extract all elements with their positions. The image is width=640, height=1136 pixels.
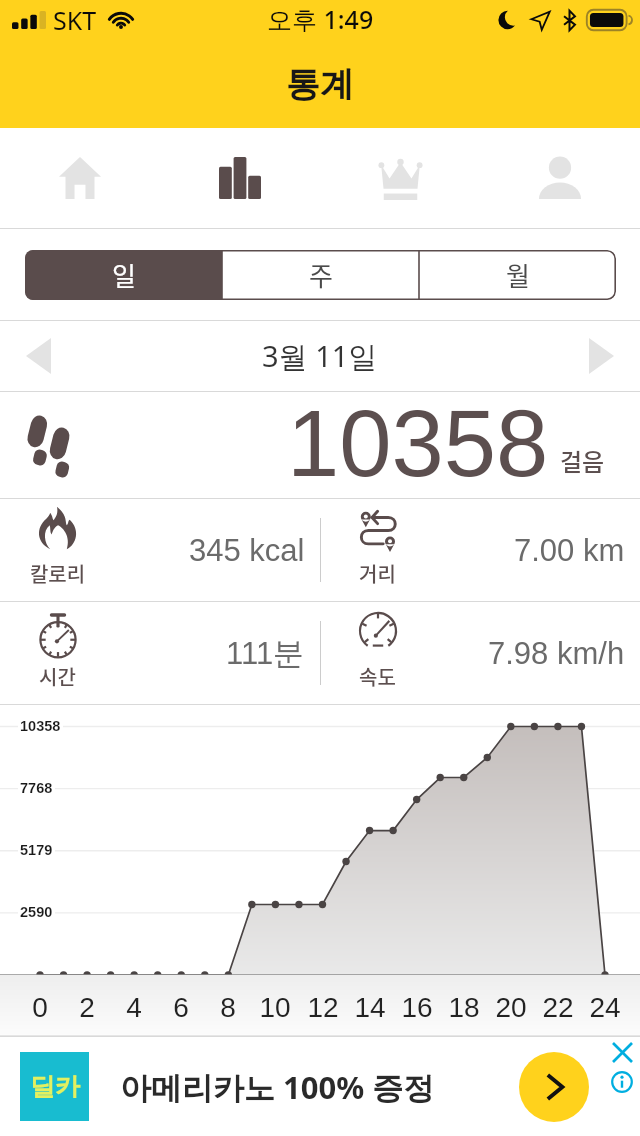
button[interactable]: Open advertisement	[519, 1052, 589, 1122]
staticText: SKT	[53, 3, 97, 37]
staticText: 주	[309, 256, 333, 294]
staticText: 10358	[287, 391, 549, 496]
button[interactable]: 월	[419, 250, 616, 300]
staticText: 5179	[20, 842, 53, 858]
button[interactable]: Home	[0, 128, 160, 228]
staticText: 월	[506, 256, 530, 294]
button[interactable]: 속도	[320, 602, 640, 704]
staticText: 12	[298, 992, 348, 1023]
button[interactable]: Ranking	[320, 128, 480, 228]
staticText: 7.98 km/h	[488, 636, 625, 671]
staticText: 딜카	[30, 1071, 80, 1102]
staticText: 걸음	[560, 443, 605, 478]
staticText: 8	[203, 992, 253, 1023]
staticText: 20	[486, 992, 536, 1023]
staticText: 345 kcal	[189, 533, 305, 568]
staticText: 24	[580, 992, 630, 1023]
button[interactable]: 칼로리	[0, 499, 320, 601]
staticText: 거리	[320, 559, 435, 588]
staticText: 7768	[20, 780, 53, 796]
staticText: 111분	[226, 634, 305, 673]
staticText: 일	[112, 256, 136, 294]
staticText: 7.00 km	[514, 533, 625, 568]
button[interactable]: 시간	[0, 602, 320, 704]
button[interactable]: 주	[222, 250, 419, 300]
button[interactable]: Profile	[480, 128, 640, 228]
staticText: 시간	[0, 662, 115, 691]
staticText: 칼로리	[0, 559, 115, 588]
button[interactable]: 딜카	[0, 1037, 640, 1136]
button[interactable]: Close ad	[607, 1037, 637, 1067]
button[interactable]: 일	[25, 250, 222, 300]
staticText: 2590	[20, 904, 53, 920]
button[interactable]: 10358	[0, 392, 640, 498]
button[interactable]: Ad information	[607, 1067, 637, 1097]
staticText: 아메리카노 100% 증정	[120, 1066, 435, 1108]
staticText: 2	[62, 992, 112, 1023]
staticText: 14	[345, 992, 395, 1023]
staticText: 0	[15, 992, 65, 1023]
staticText: 18	[439, 992, 489, 1023]
button[interactable]: Statistics	[160, 128, 320, 228]
staticText: 10	[250, 992, 300, 1023]
staticText: 6	[156, 992, 206, 1023]
staticText: 속도	[320, 662, 435, 691]
staticText: 통계	[286, 63, 354, 106]
staticText: 4	[109, 992, 159, 1023]
button[interactable]: Next day	[563, 321, 640, 391]
staticText: 16	[392, 992, 442, 1023]
staticText: 오후 1:49	[267, 2, 374, 36]
staticText: 10358	[20, 718, 61, 734]
staticText: 3월 11일	[262, 336, 378, 376]
button[interactable]: 거리	[320, 499, 640, 601]
button[interactable]: Previous day	[0, 321, 77, 391]
staticText: 22	[533, 992, 583, 1023]
